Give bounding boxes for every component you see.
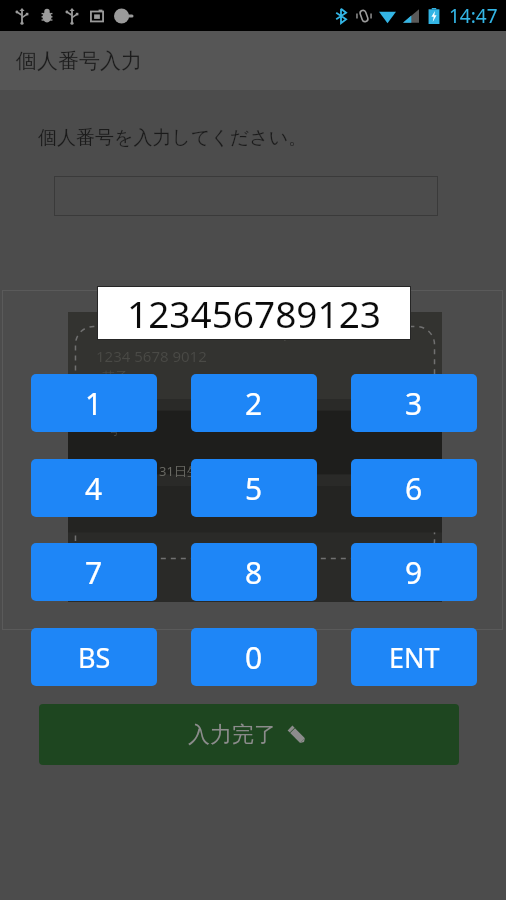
button[interactable]: ENT	[351, 628, 477, 686]
staticText: 9	[405, 552, 423, 593]
staticText: 3	[405, 383, 423, 424]
staticText: 平成 5年 3月31日生	[82, 462, 200, 480]
staticText: 14:47	[449, 3, 498, 29]
staticText: 通知カード	[78, 326, 442, 342]
staticText: 1	[85, 383, 103, 424]
staticText: 8	[245, 552, 263, 593]
staticText: 4	[85, 468, 103, 509]
button[interactable]: 7	[31, 543, 157, 601]
staticText: 123456789123	[127, 288, 381, 338]
staticText: ENT	[389, 639, 440, 676]
staticText: 0	[245, 637, 263, 678]
button[interactable]: 2	[191, 374, 317, 432]
button[interactable]: 6	[351, 459, 477, 517]
button[interactable]	[54, 176, 438, 216]
staticText: 花子	[102, 368, 128, 384]
button[interactable]: BS	[31, 628, 157, 686]
staticText: 個人番号を入力してください。	[38, 126, 308, 150]
staticText: 2	[245, 383, 263, 424]
staticText: 6	[405, 468, 423, 509]
staticText: 性別 女	[390, 462, 436, 480]
staticText: 個人番号入力	[16, 48, 142, 74]
staticText: 県 号	[108, 410, 119, 438]
button[interactable]: 4	[31, 459, 157, 517]
button[interactable]: 入力完了	[39, 704, 459, 765]
staticText: 1234 5678 9012	[96, 346, 207, 366]
button[interactable]: 8	[191, 543, 317, 601]
button[interactable]: 1	[31, 374, 157, 432]
button[interactable]: 5	[191, 459, 317, 517]
button[interactable]: 9	[351, 543, 477, 601]
button[interactable]: 0	[191, 628, 317, 686]
button[interactable]: 3	[351, 374, 477, 432]
staticText: 入力完了	[188, 721, 276, 749]
staticText: 5	[245, 468, 263, 509]
staticText: BS	[78, 639, 111, 676]
staticText: 7	[85, 552, 103, 593]
